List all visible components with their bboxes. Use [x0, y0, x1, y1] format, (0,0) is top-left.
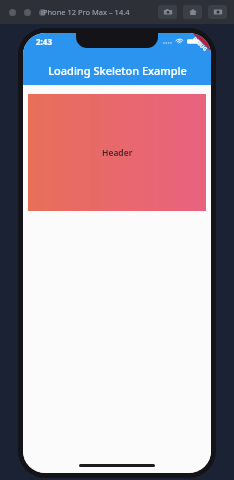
button[interactable]: Minimize window [24, 9, 31, 16]
button[interactable]: Home [183, 5, 202, 19]
staticText: DEBUG [191, 36, 209, 53]
staticText: Header [102, 147, 133, 159]
button[interactable]: Header [28, 94, 206, 211]
staticText: Loading Skeleton Example [48, 63, 187, 78]
button[interactable]: Record screen [208, 5, 227, 19]
button[interactable]: Take screenshot [158, 5, 177, 19]
staticText: 2:43 [36, 36, 52, 47]
button[interactable]: Close window [9, 9, 16, 16]
button[interactable]: Zoom window [39, 9, 46, 16]
staticText: iPhone 12 Pro Max – 14.4 [41, 7, 130, 17]
